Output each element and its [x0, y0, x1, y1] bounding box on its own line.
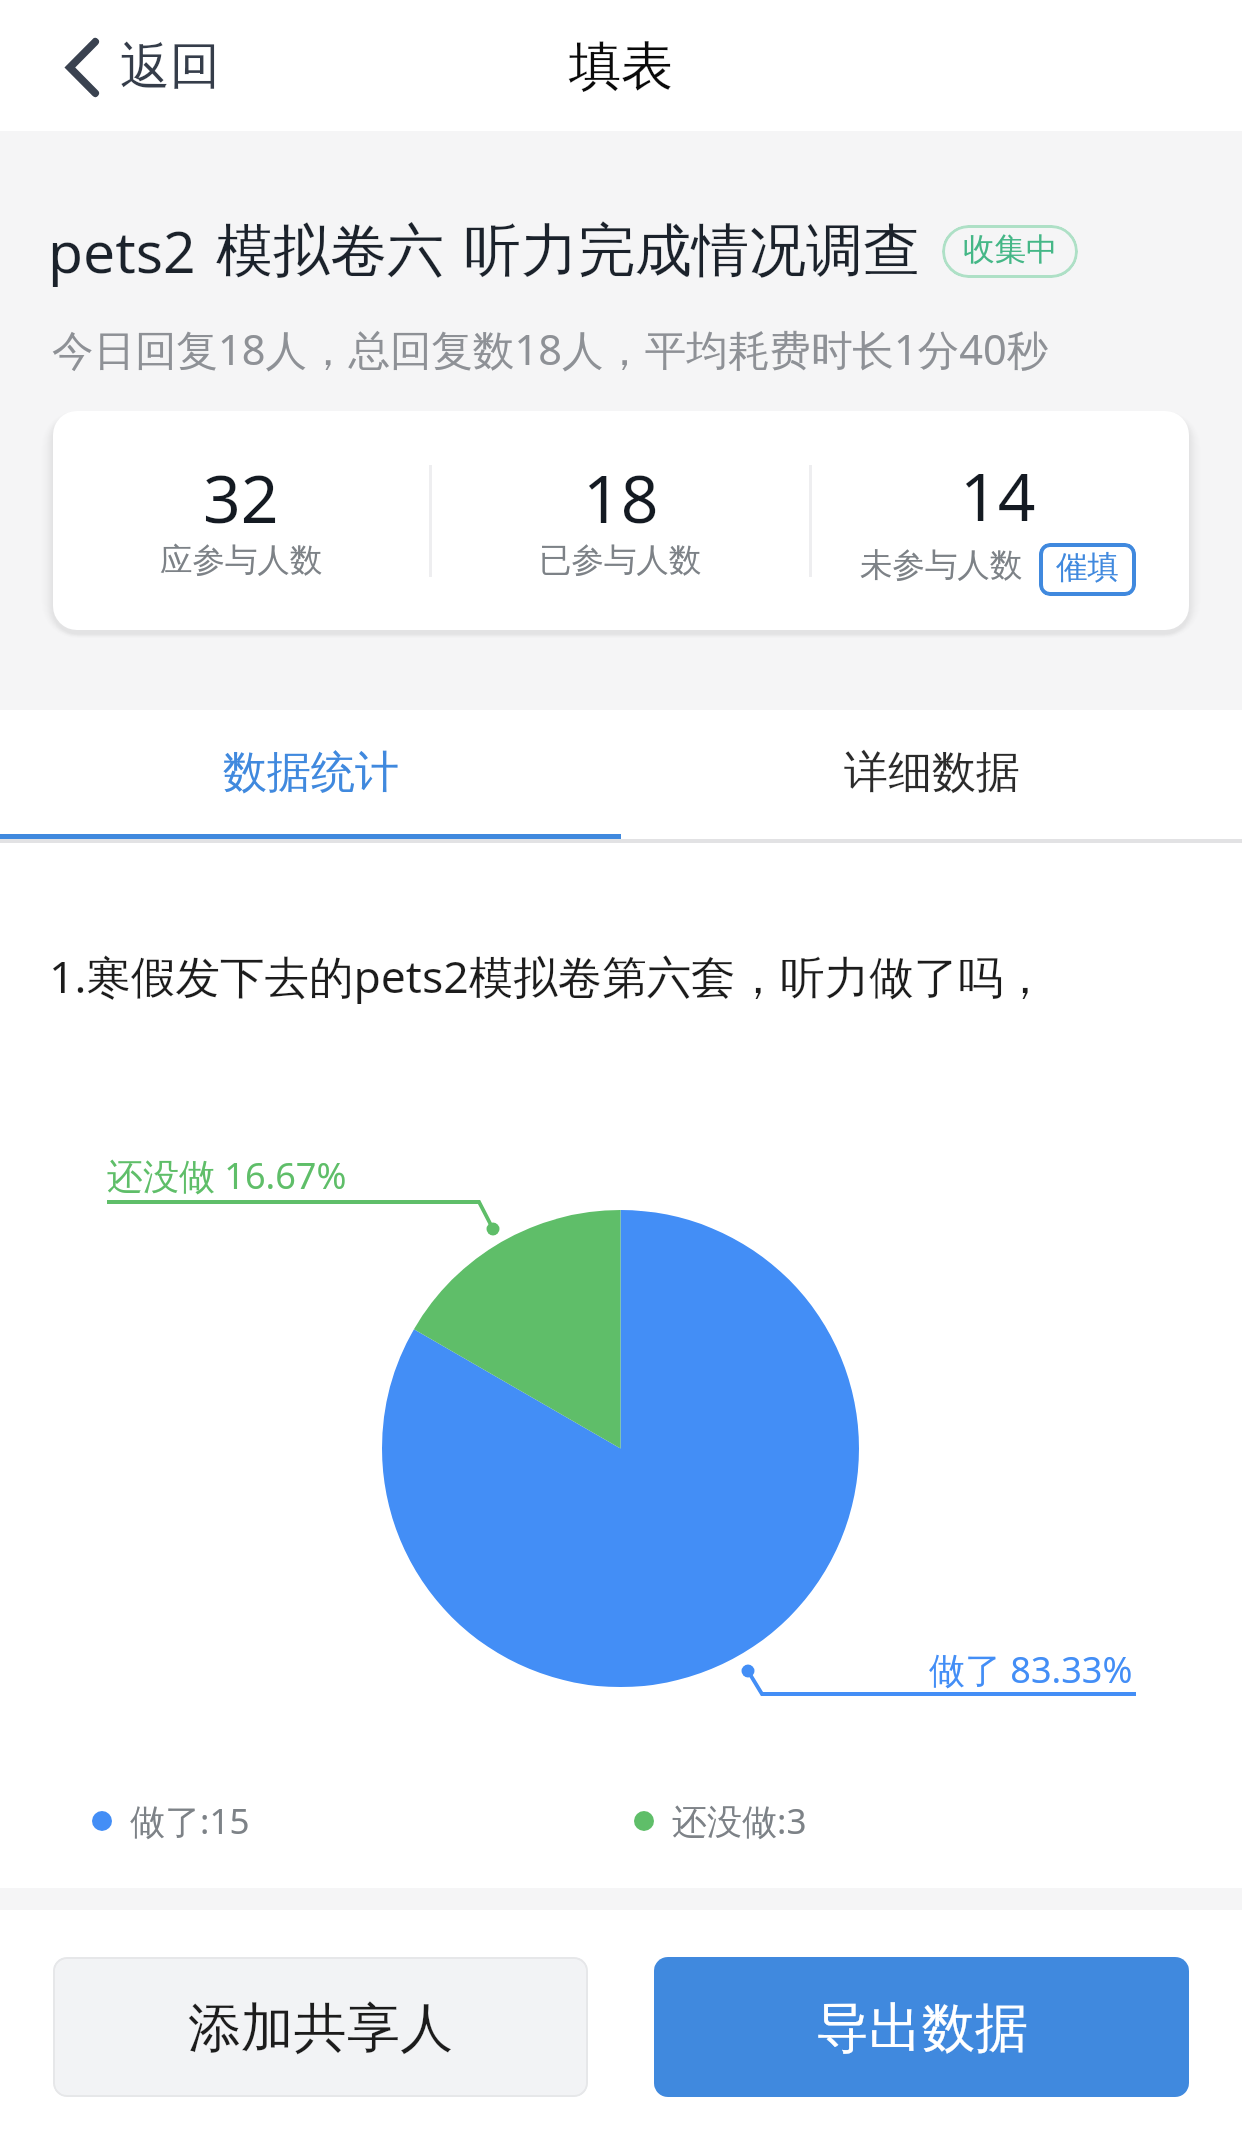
staticText: 添加共享人 — [188, 1995, 453, 2062]
staticText: 做了 83.33% — [929, 1645, 1133, 1694]
other: Back — [66, 38, 99, 97]
staticText: 18 — [583, 452, 659, 542]
staticText: 应参与人数 — [160, 540, 323, 581]
button[interactable]: 添加共享人 — [53, 1957, 588, 2097]
staticText: 今日回复18人，总回复数18人，平均耗费时长1分40秒 — [52, 321, 1049, 378]
staticText: 收集中 — [963, 230, 1058, 270]
staticText: 14 — [960, 450, 1036, 540]
staticText: 还没做:3 — [672, 1797, 807, 1845]
staticText: 32 — [203, 452, 279, 542]
staticText: pets2 — [48, 212, 196, 290]
staticText: 填表 — [569, 34, 673, 100]
button[interactable]: 导出数据 — [654, 1957, 1189, 2097]
staticText: 1.寒假发下去的pets2模拟卷第六套，听力做了吗， — [49, 945, 1048, 1006]
staticText: 返回 — [120, 35, 220, 98]
staticText: 听力完成情况调查 — [464, 215, 920, 287]
staticText: 做了:15 — [130, 1797, 250, 1845]
staticText: 未参与人数 — [860, 545, 1023, 586]
staticText: 导出数据 — [816, 1995, 1028, 2062]
staticText: 已参与人数 — [539, 540, 702, 581]
button[interactable]: Back — [0, 0, 242, 131]
staticText: 模拟卷六 — [216, 215, 444, 287]
staticText: 催填 — [1056, 548, 1119, 588]
button[interactable]: 详细数据 — [621, 710, 1242, 843]
button[interactable]: 催填 — [1039, 543, 1136, 596]
staticText: 详细数据 — [844, 745, 1020, 800]
staticText: 数据统计 — [223, 745, 399, 800]
staticText: 还没做 16.67% — [107, 1151, 347, 1200]
button[interactable]: 数据统计 — [0, 710, 621, 843]
